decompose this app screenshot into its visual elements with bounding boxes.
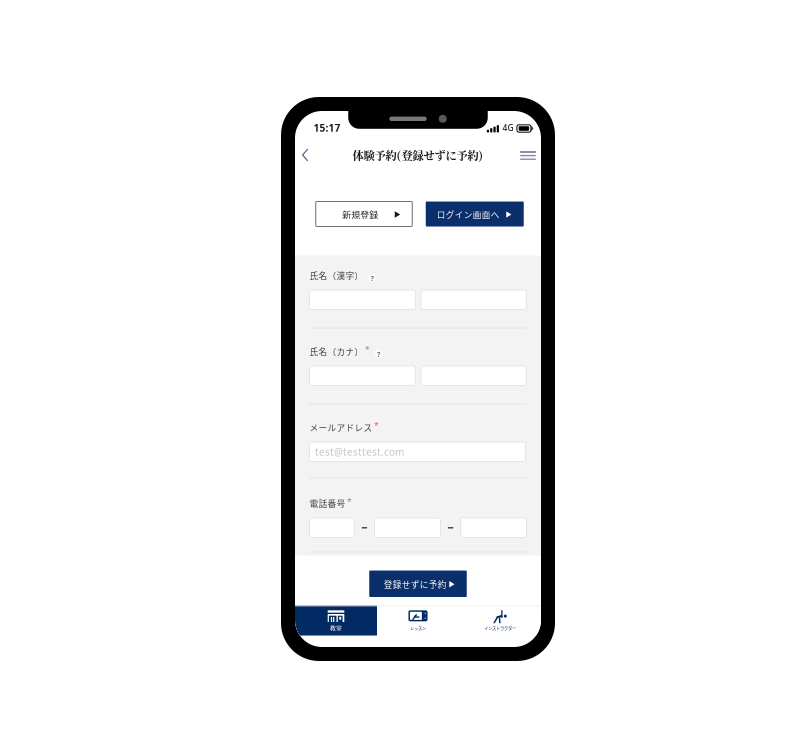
staticText: 4G: [502, 122, 513, 133]
button[interactable]: 登録せずに予約: [369, 570, 467, 597]
staticText: test@testtest.com: [315, 445, 404, 458]
staticText: 体験予約(登録せずに予約): [352, 147, 483, 163]
staticText: *: [374, 420, 379, 431]
staticText: *: [347, 496, 352, 507]
button[interactable]: Back: [296, 140, 315, 169]
staticText: メールアドレス: [309, 421, 372, 434]
staticText: ?: [377, 349, 380, 359]
staticText: 登録せずに予約: [384, 578, 447, 590]
button[interactable]: インストラクター: [459, 605, 541, 635]
button[interactable]: 教室: [295, 605, 377, 635]
staticText: 電話番号: [309, 497, 345, 510]
button[interactable]: Menu: [514, 142, 542, 168]
staticText: 氏名（カナ）: [309, 345, 363, 358]
staticText: ログイン画面へ: [437, 208, 500, 221]
button[interactable]: ログイン画面へ: [426, 201, 524, 226]
staticText: *: [365, 344, 370, 355]
staticText: 新規登録: [342, 208, 378, 221]
button[interactable]: レッスン: [377, 605, 459, 635]
staticText: 15:17: [314, 121, 341, 135]
staticText: 教室: [330, 623, 342, 632]
staticText: インストラクター: [484, 625, 516, 631]
staticText: 氏名（漢字）: [309, 269, 363, 282]
staticText: ?: [371, 273, 374, 283]
button[interactable]: 新規登録: [316, 201, 412, 226]
staticText: レッスン: [410, 625, 426, 631]
